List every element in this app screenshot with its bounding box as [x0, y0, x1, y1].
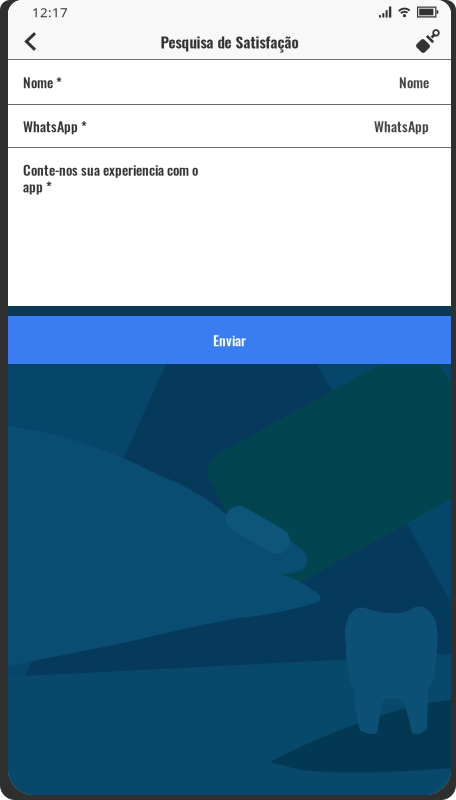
staticText: Nome *	[23, 72, 62, 92]
staticText: WhatsApp *	[23, 116, 87, 136]
staticText: Enviar	[213, 330, 246, 350]
staticText: app *	[23, 176, 52, 196]
button[interactable]: Enviar	[8, 316, 451, 364]
staticText: Conte-nos sua experiencia com o	[23, 159, 198, 180]
staticText: Pesquisa de Satisfação	[160, 30, 298, 53]
button[interactable]: Clear form	[414, 24, 451, 58]
staticText: Nome	[399, 72, 429, 92]
button[interactable]: WhatsApp *	[8, 105, 451, 147]
button[interactable]: Nome *	[8, 60, 451, 104]
staticText: 12:17	[32, 3, 68, 21]
button[interactable]: Back	[8, 24, 36, 59]
button[interactable]: Conte-nos sua experiencia com o	[8, 148, 451, 306]
staticText: WhatsApp	[374, 116, 429, 136]
